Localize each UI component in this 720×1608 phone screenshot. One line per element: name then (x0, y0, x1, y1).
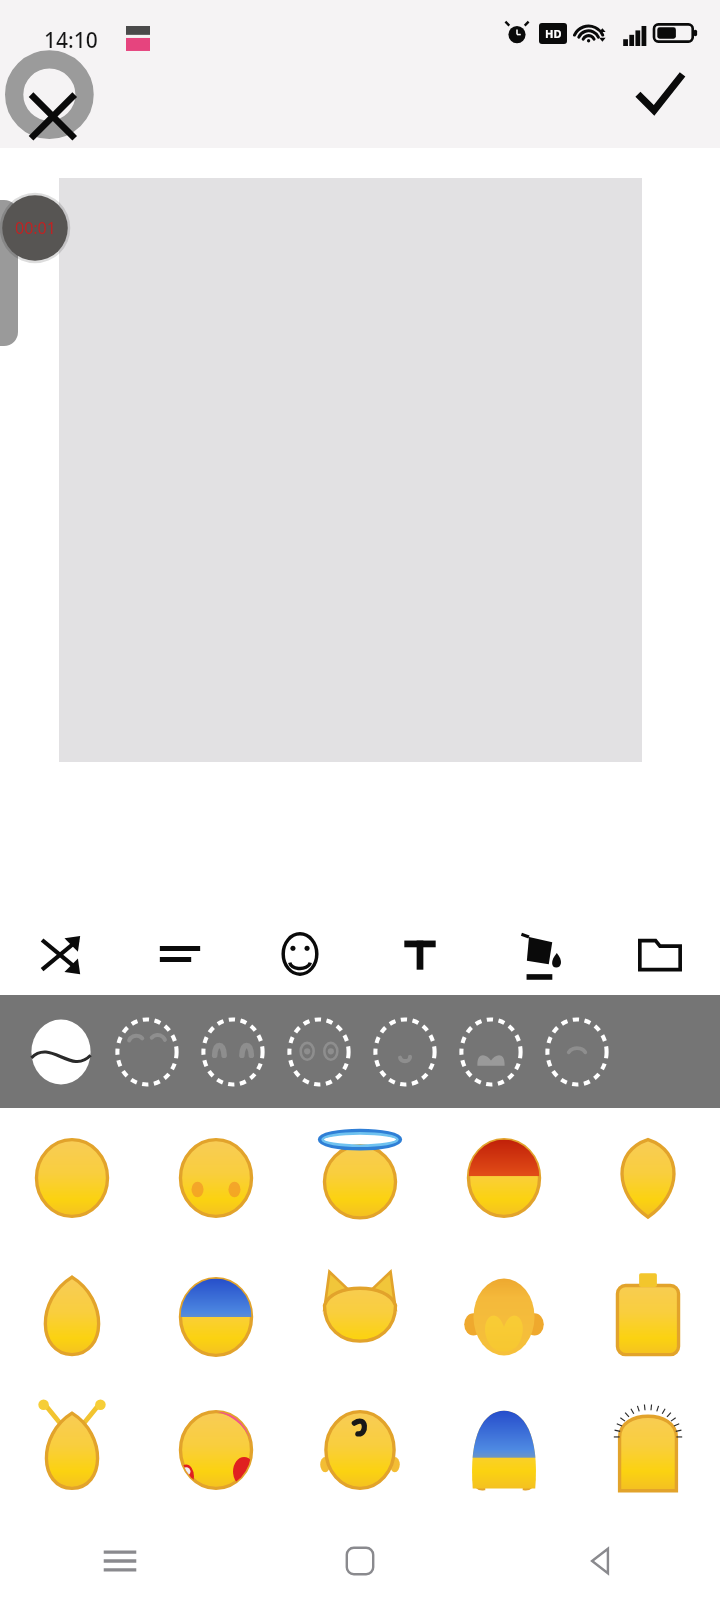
button[interactable]: Face style 9 (432, 1247, 576, 1386)
button[interactable]: Face style 14 (432, 1386, 576, 1513)
button[interactable]: Face style 2 (144, 1108, 288, 1247)
button[interactable]: Face style 5 (576, 1108, 720, 1247)
button[interactable]: Folder (600, 913, 720, 995)
button[interactable]: Recents (0, 1513, 240, 1608)
button[interactable]: Feature category 6 (448, 1002, 534, 1102)
button[interactable]: Home (240, 1513, 480, 1608)
button[interactable]: Face style 13 (288, 1386, 432, 1513)
button[interactable]: Face style 4 (432, 1108, 576, 1247)
button[interactable]: Text (360, 913, 480, 995)
staticText: 14:10 (44, 26, 98, 55)
button[interactable]: Emoji (240, 913, 360, 995)
button[interactable]: Back (480, 1513, 720, 1608)
button[interactable]: Drawing canvas (59, 178, 642, 762)
button[interactable]: Feature category 5 (362, 1002, 448, 1102)
button[interactable]: Feature category 4 (276, 1002, 362, 1102)
button[interactable]: Align (120, 913, 240, 995)
button[interactable]: Confirm (628, 62, 690, 124)
button[interactable]: Face style 12 (144, 1386, 288, 1513)
button[interactable]: Face style 3 (288, 1108, 432, 1247)
button[interactable]: Feature category 2 (104, 1002, 190, 1102)
button[interactable]: Face style 10 (576, 1247, 720, 1386)
button[interactable]: Feature category 7 (534, 1002, 620, 1102)
button[interactable]: Shuffle (0, 913, 120, 995)
button[interactable]: Face style 6 (0, 1247, 144, 1386)
button[interactable]: Feature category 1 (18, 1002, 104, 1102)
staticText: 00:01 (15, 217, 56, 239)
button[interactable]: Layers panel (0, 200, 18, 346)
button[interactable]: Feature category 3 (190, 1002, 276, 1102)
button[interactable]: Close (8, 55, 96, 143)
button[interactable]: Face style 11 (0, 1386, 144, 1513)
button[interactable]: Fill color (480, 913, 600, 995)
staticText: HD (545, 26, 562, 41)
button[interactable]: Face style 1 (0, 1108, 144, 1247)
button[interactable]: Face style 7 (144, 1247, 288, 1386)
button[interactable]: Animation timer 00:01 (0, 192, 71, 264)
button[interactable]: Face style 8 (288, 1247, 432, 1386)
button[interactable]: Face style 15 (576, 1386, 720, 1513)
